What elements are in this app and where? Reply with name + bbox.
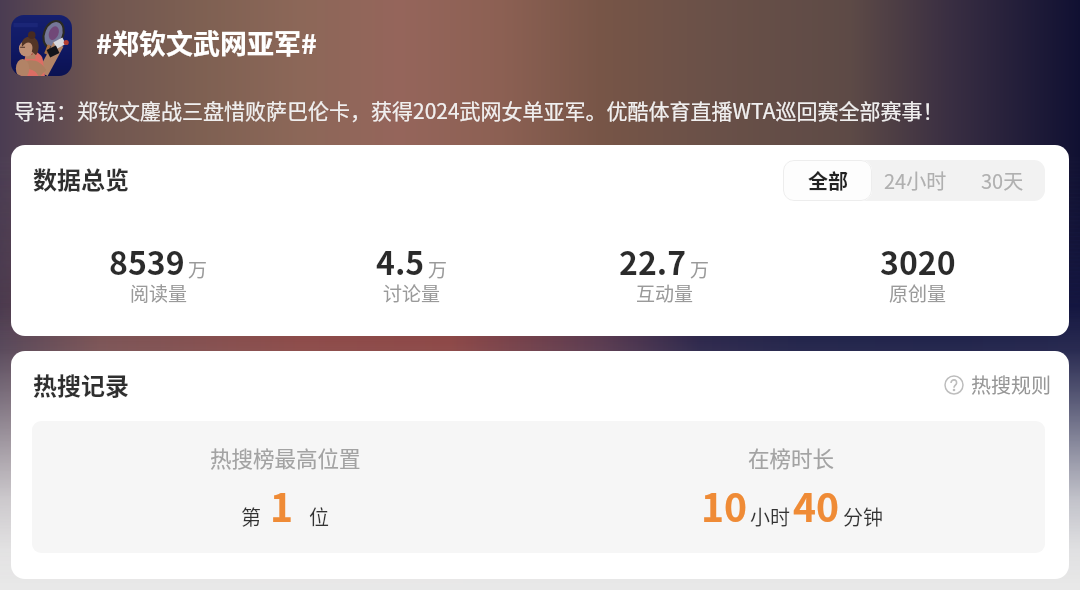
staticText: 30天 (981, 166, 1024, 195)
staticText: 1 (270, 477, 294, 533)
button[interactable]: 22.7 (538, 238, 791, 312)
staticText: 8539 (109, 238, 185, 284)
staticText: 40 (793, 477, 840, 533)
staticText: 22.7 (619, 238, 687, 284)
staticText: 24小时 (884, 166, 947, 195)
staticText: 热搜规则 (971, 370, 1051, 399)
staticText: 阅读量 (130, 279, 188, 307)
button[interactable]: 全部 (783, 160, 872, 201)
button[interactable]: 3020 (791, 238, 1044, 312)
button[interactable]: Topic avatar (11, 15, 72, 76)
staticText: 在榜时长 (748, 442, 835, 473)
staticText: 热搜记录 (33, 367, 129, 402)
staticText: 4.5 (376, 238, 425, 284)
staticText: 小时 (750, 502, 790, 531)
button[interactable]: 8539 (32, 238, 285, 312)
staticText: 10 (701, 477, 748, 533)
button[interactable]: 热搜规则 (944, 370, 1051, 399)
staticText: 万 (188, 255, 208, 283)
button[interactable]: 热搜榜最高位置 (32, 421, 538, 553)
staticText: 原创量 (889, 279, 947, 307)
button[interactable]: 在榜时长 (538, 421, 1045, 553)
staticText: 位 (309, 502, 329, 531)
staticText: 互动量 (636, 279, 694, 307)
staticText: 数据总览 (33, 161, 129, 196)
staticText: 导语：郑钦文鏖战三盘惜败萨巴伦卡，获得2024武网女单亚军。优酷体育直播WTA巡… (14, 95, 944, 125)
staticText: 分钟 (843, 502, 883, 531)
staticText: #郑钦文武网亚军# (96, 23, 317, 62)
staticText: 全部 (808, 166, 848, 195)
staticText: 万 (428, 255, 448, 283)
staticText: 热搜榜最高位置 (210, 442, 361, 473)
button[interactable]: 24小时 (872, 160, 959, 201)
button[interactable]: 30天 (959, 160, 1045, 201)
staticText: 3020 (880, 238, 956, 284)
button[interactable]: 4.5 (285, 238, 538, 312)
staticText: 第 (241, 502, 261, 531)
staticText: 万 (690, 255, 710, 283)
staticText: 讨论量 (383, 279, 441, 307)
